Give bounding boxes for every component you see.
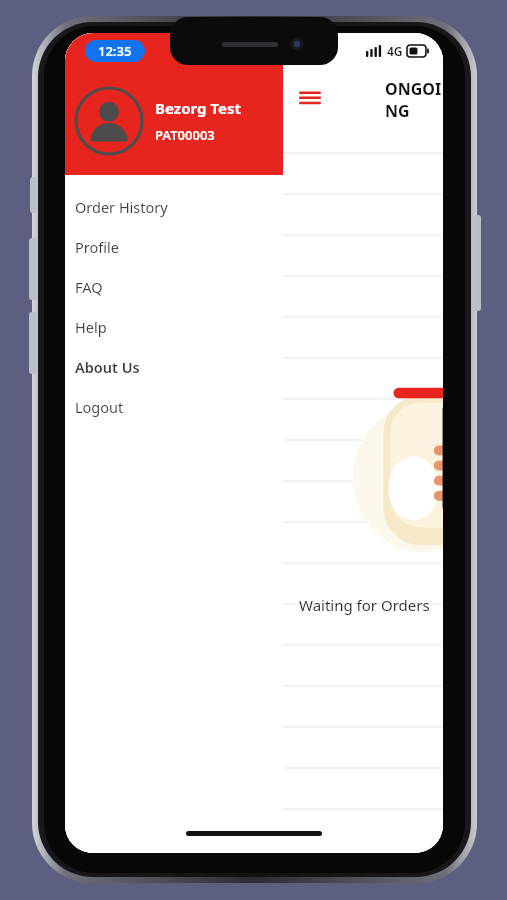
staticText: Logout [75,397,124,417]
staticText: About Us [75,357,140,377]
button[interactable]: Open navigation menu [293,83,327,117]
staticText: Profile [75,237,119,257]
button[interactable]: Logout [65,387,283,427]
staticText: PAT00003 [155,126,215,144]
button[interactable]: Profile [65,227,283,267]
button[interactable]: Help [65,307,283,347]
staticText: 4G [387,43,403,59]
staticText: Bezorg Test [155,98,242,118]
staticText: Help [75,317,107,337]
staticText: FAQ [75,277,103,297]
staticText: Waiting for Orders [299,595,430,615]
staticText: Order History [75,197,168,217]
staticText: 12:35 [98,42,132,60]
button[interactable]: About Us [65,347,283,387]
button[interactable]: Order History [65,187,283,227]
button[interactable]: FAQ [65,267,283,307]
staticText: ONGOING [385,78,443,122]
